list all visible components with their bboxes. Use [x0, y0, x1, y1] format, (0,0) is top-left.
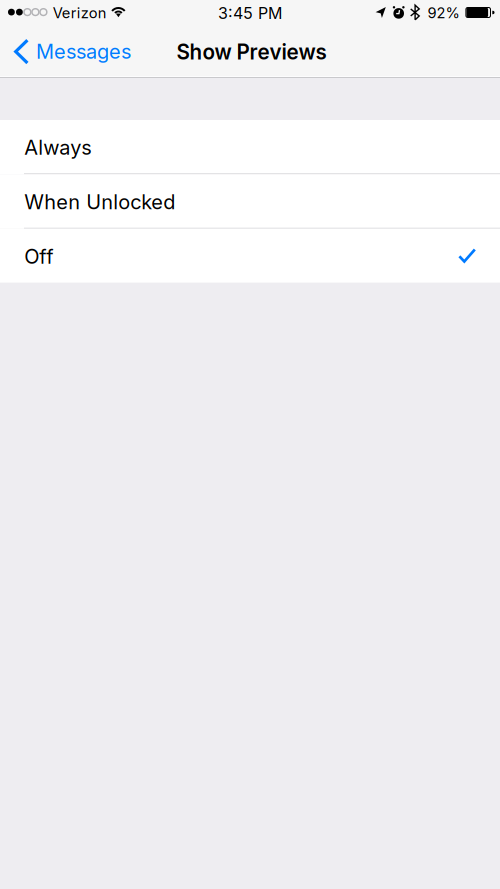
- staticText: Always: [24, 135, 91, 160]
- staticText: 92%: [427, 4, 459, 22]
- staticText: Off: [24, 244, 53, 268]
- staticText: 3:45 PM: [218, 3, 282, 23]
- staticText: Show Previews: [177, 39, 327, 64]
- button[interactable]: When Unlocked: [0, 174, 500, 229]
- staticText: Verizon: [53, 4, 107, 22]
- staticText: When Unlocked: [24, 190, 175, 214]
- button[interactable]: Messages: [0, 25, 141, 77]
- button[interactable]: Off: [0, 229, 500, 283]
- button[interactable]: Always: [0, 120, 500, 174]
- staticText: Messages: [36, 39, 131, 64]
